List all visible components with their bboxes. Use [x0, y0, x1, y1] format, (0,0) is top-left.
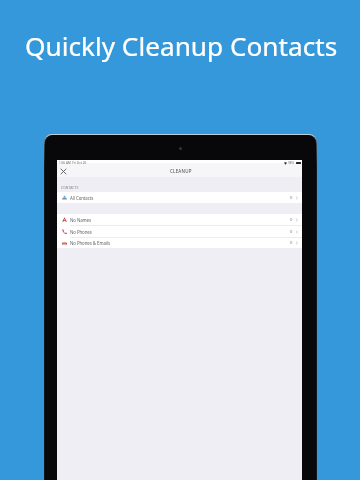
staticText: CLEANUP [170, 168, 192, 174]
staticText: 0 [290, 195, 293, 201]
button[interactable]: All Contacts [57, 192, 302, 203]
staticText: All Contacts [70, 195, 94, 201]
staticText: 0 [290, 229, 293, 235]
staticText: No Names [70, 217, 91, 223]
button[interactable]: Close [58, 166, 69, 177]
staticText: No Phones & Emails [70, 240, 110, 246]
staticText: 0 [290, 240, 293, 246]
staticText: 1:56 AM Fri Oct 26 [59, 161, 87, 165]
button[interactable]: No Phones [57, 226, 302, 237]
button[interactable]: No Phones & Emails [57, 238, 302, 248]
staticText: 98% [288, 161, 295, 165]
staticText: No Phones [70, 229, 92, 235]
staticText: 0 [290, 217, 293, 223]
staticText: CONTACTS [61, 185, 79, 189]
button[interactable]: No Names [57, 214, 302, 225]
staticText: Quickly Cleanup Contacts [25, 28, 338, 64]
